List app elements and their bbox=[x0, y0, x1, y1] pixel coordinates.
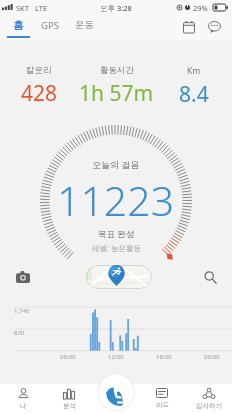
staticText: 8.4 bbox=[179, 80, 209, 109]
button[interactable]: GPS bbox=[35, 19, 64, 35]
staticText: 오늘의 걸음 bbox=[92, 158, 140, 170]
staticText: 870 bbox=[14, 329, 25, 337]
button[interactable]: 입사하기 bbox=[186, 384, 232, 414]
staticText: 활동시간 bbox=[100, 65, 134, 76]
staticText: 428 bbox=[21, 79, 58, 108]
staticText: 29% bbox=[193, 3, 208, 13]
button[interactable]: Messages bbox=[206, 19, 223, 34]
staticText: 00:00 bbox=[204, 353, 220, 361]
staticText: 나 bbox=[20, 402, 27, 410]
button[interactable]: 홈 bbox=[4, 19, 33, 40]
staticText: SKT bbox=[16, 3, 29, 13]
button[interactable]: Camera bbox=[12, 266, 34, 288]
staticText: GPS bbox=[41, 19, 59, 32]
staticText: 12:00 bbox=[108, 353, 124, 361]
button[interactable]: 운동 bbox=[70, 19, 98, 35]
button[interactable]: 활동시간 bbox=[78, 65, 155, 108]
button[interactable] bbox=[86, 265, 152, 289]
staticText: 06:00 bbox=[60, 353, 76, 361]
staticText: 목표 완성 bbox=[98, 228, 135, 240]
staticText: 칼로리 bbox=[26, 65, 52, 76]
staticText: 오후 3:28 bbox=[100, 3, 132, 13]
staticText: 입사하기 bbox=[196, 402, 222, 410]
staticText: 1h 57m bbox=[79, 79, 154, 108]
button[interactable]: Search bbox=[199, 266, 221, 288]
button[interactable]: Km bbox=[155, 65, 232, 109]
staticText: 11223 bbox=[57, 172, 175, 228]
button[interactable]: Activity bbox=[98, 374, 134, 410]
staticText: 홈 bbox=[13, 19, 24, 32]
staticText: 분석 bbox=[63, 402, 76, 410]
staticText: 레벨: 높은활동 bbox=[92, 243, 141, 253]
staticText: 18:00 bbox=[156, 353, 172, 361]
button[interactable]: Calendar bbox=[181, 19, 197, 34]
button[interactable]: 분석 bbox=[46, 384, 92, 414]
staticText: 피드 bbox=[156, 401, 169, 409]
staticText: LTE bbox=[35, 3, 48, 13]
staticText: Km bbox=[187, 65, 201, 77]
button[interactable]: 나 bbox=[0, 384, 46, 414]
button[interactable]: 피드 bbox=[139, 384, 185, 414]
staticText: 1,740 bbox=[14, 307, 30, 315]
staticText: 운동 bbox=[75, 19, 94, 31]
button[interactable]: 칼로리 bbox=[0, 65, 78, 108]
